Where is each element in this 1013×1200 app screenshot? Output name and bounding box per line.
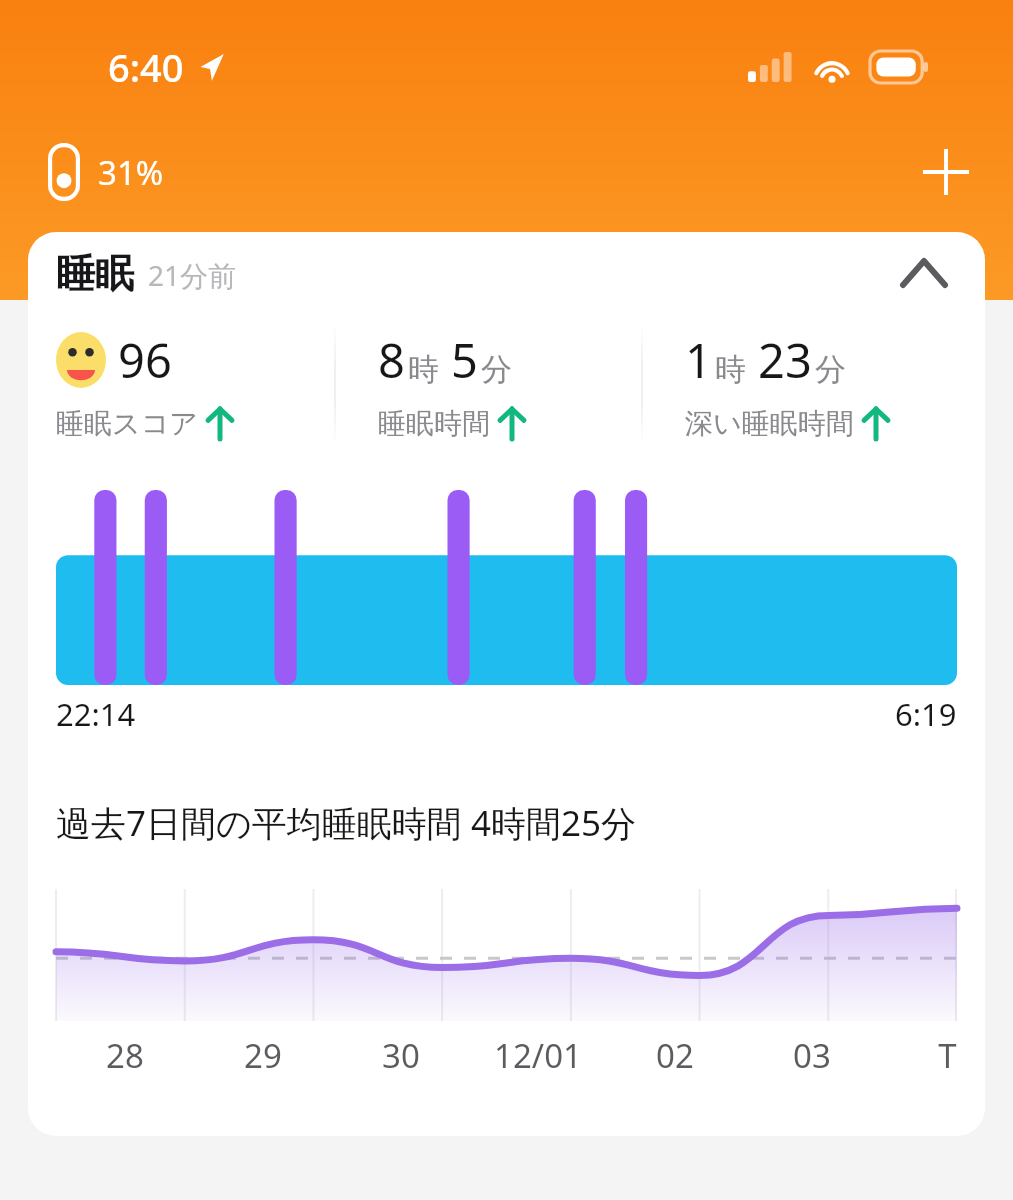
button[interactable]: 1 <box>643 314 985 454</box>
button[interactable]: Collapse <box>893 242 955 304</box>
staticText: 02 <box>656 1033 694 1078</box>
staticText: 分 <box>481 350 512 389</box>
staticText: 5 <box>451 328 478 392</box>
staticText: 21分前 <box>148 256 237 294</box>
staticText: 過去7日間の平均睡眠時間 4時間25分 <box>56 799 637 847</box>
staticText: 29 <box>244 1033 282 1078</box>
staticText: 時 <box>715 350 746 389</box>
staticText: 8 <box>378 328 405 392</box>
staticText: 12/01 <box>494 1033 582 1078</box>
staticText: 深い睡眠時間 <box>685 406 854 441</box>
staticText: 28 <box>106 1033 144 1078</box>
staticText: 22:14 <box>56 693 136 735</box>
staticText: 6:19 <box>895 693 957 735</box>
staticText: 分 <box>815 350 846 389</box>
staticText: 31% <box>98 150 164 195</box>
staticText: 96 <box>118 328 172 392</box>
staticText: 23 <box>758 328 812 392</box>
button[interactable]: Add <box>909 135 983 209</box>
button[interactable]: 96 <box>28 314 334 454</box>
staticText: 睡眠 <box>56 249 134 298</box>
staticText: 1 <box>685 328 712 392</box>
staticText: 睡眠スコア <box>56 406 198 441</box>
button[interactable]: 睡眠 <box>28 232 985 314</box>
button[interactable]: 8 <box>336 314 641 454</box>
staticText: 6:40 <box>108 41 184 93</box>
staticText: T <box>938 1033 957 1078</box>
staticText: 30 <box>382 1033 420 1078</box>
staticText: 03 <box>793 1033 831 1078</box>
staticText: 時 <box>408 350 439 389</box>
staticText: 睡眠時間 <box>378 406 490 441</box>
button[interactable]: 31% <box>48 143 164 201</box>
